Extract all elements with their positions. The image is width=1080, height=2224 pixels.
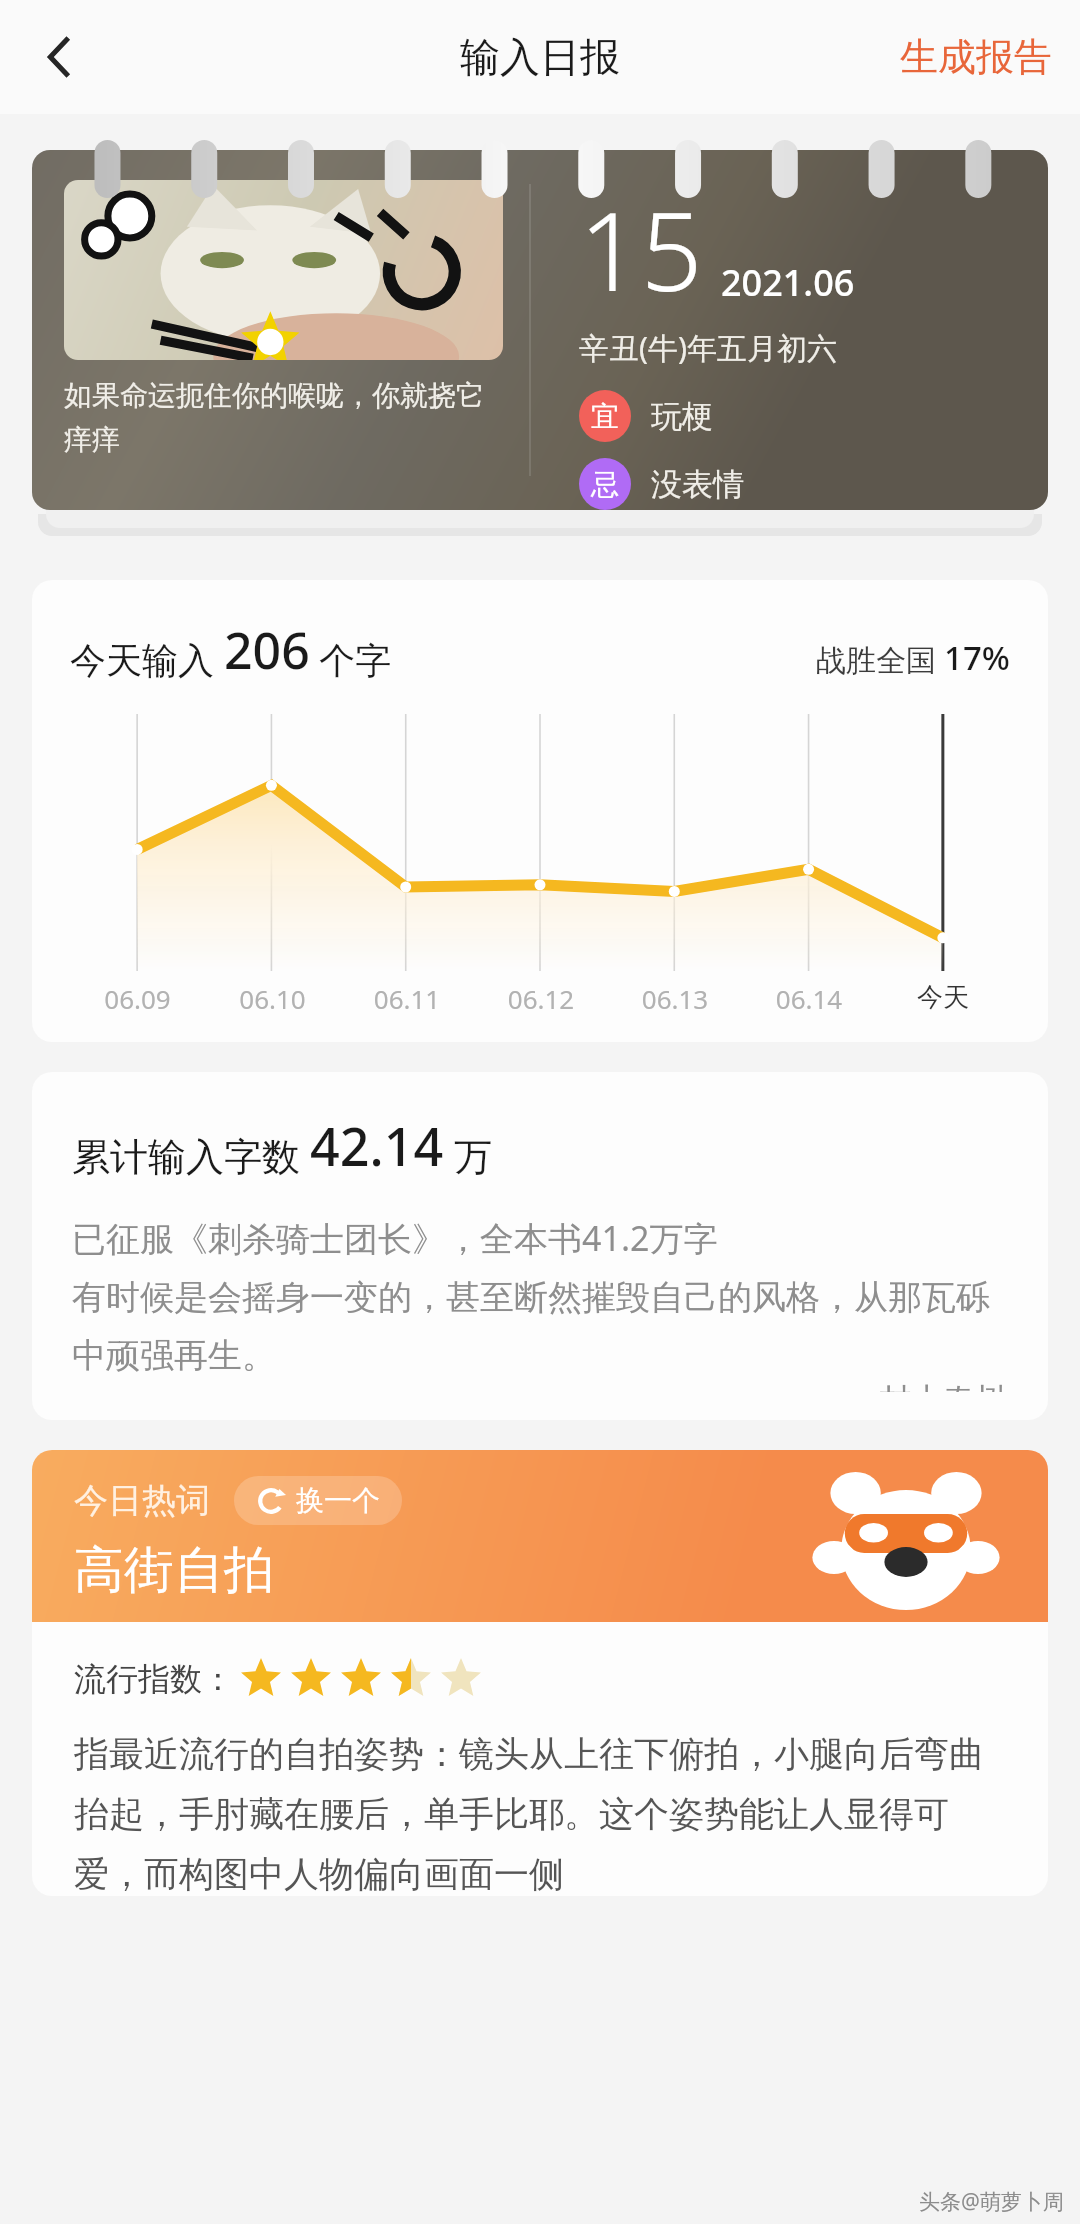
staticText: 忌	[591, 467, 619, 502]
button[interactable]: 宜	[579, 390, 713, 442]
staticText: 15	[579, 176, 703, 323]
staticText: 06.09	[70, 981, 205, 1016]
staticText: ——村上春树	[815, 1377, 1008, 1392]
staticText: 2021.06	[721, 258, 855, 307]
staticText: 已征服《刺杀骑士团长》，全本书41.2万字 有时候是会摇身一变的，甚至断然摧毁自…	[72, 1215, 1008, 1377]
staticText: 206	[224, 616, 310, 684]
staticText: 万	[444, 1129, 492, 1181]
button[interactable]: 忌	[579, 458, 744, 510]
staticText: 换一个	[296, 1483, 380, 1518]
staticText: 生成报告	[900, 33, 1052, 81]
staticText: 17%	[944, 635, 1010, 680]
staticText: 今日热词	[74, 1479, 210, 1522]
button[interactable]: Back	[8, 14, 94, 100]
staticText: 辛丑(牛)年五月初六	[579, 327, 837, 368]
staticText: 没表情	[651, 465, 744, 504]
staticText: 06.10	[205, 981, 340, 1016]
staticText: 42.14	[310, 1110, 444, 1181]
staticText: 输入日报	[460, 32, 620, 82]
staticText: 如果命运扼住你的喉咙，你就挠它痒痒	[64, 378, 503, 457]
button[interactable]: 生成报告	[872, 17, 1080, 97]
staticText: 指最近流行的自拍姿势：镜头从上往下俯拍，小腿向后弯曲抬起，手肘藏在腰后，单手比耶…	[74, 1732, 1006, 1896]
staticText: 高街自拍	[74, 1539, 274, 1602]
staticText: 流行指数：	[74, 1659, 234, 1699]
staticText: 战胜全国	[816, 639, 944, 680]
staticText: 玩梗	[651, 397, 713, 436]
button[interactable]: 累计输入字数	[32, 1072, 1048, 1420]
staticText: 06.12	[474, 981, 608, 1016]
staticText: 06.14	[742, 981, 876, 1016]
staticText: 今天	[876, 981, 1010, 1014]
staticText: 累计输入字数	[72, 1129, 310, 1181]
button[interactable]: 换一个	[234, 1476, 402, 1525]
staticText: 06.11	[340, 981, 474, 1016]
staticText: 今天输入	[70, 635, 224, 684]
staticText: 个字	[310, 635, 392, 684]
button[interactable]: 如果命运扼住你的喉咙，你就挠它痒痒	[32, 150, 1048, 510]
button[interactable]: 今天输入	[32, 580, 1048, 1042]
staticText: 06.13	[608, 981, 742, 1016]
staticText: 头条@萌萝卜周	[919, 2187, 1064, 2216]
staticText: 宜	[591, 399, 619, 434]
button[interactable]: 今日热词	[32, 1450, 1048, 1896]
